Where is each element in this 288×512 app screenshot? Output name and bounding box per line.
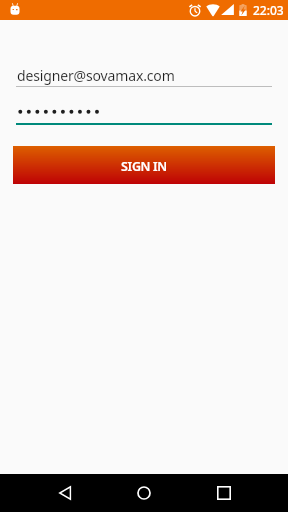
button[interactable]: SIGN IN (13, 146, 275, 184)
button[interactable]: designer@sovamax.com (0, 62, 288, 87)
staticText: SIGN IN (121, 158, 167, 175)
button[interactable] (0, 102, 288, 120)
button[interactable]: Home (125, 474, 163, 512)
staticText: 22:03 (253, 2, 284, 18)
button[interactable]: Back (46, 474, 84, 512)
button[interactable]: Recent apps (205, 474, 243, 512)
staticText: designer@sovamax.com (17, 66, 175, 85)
